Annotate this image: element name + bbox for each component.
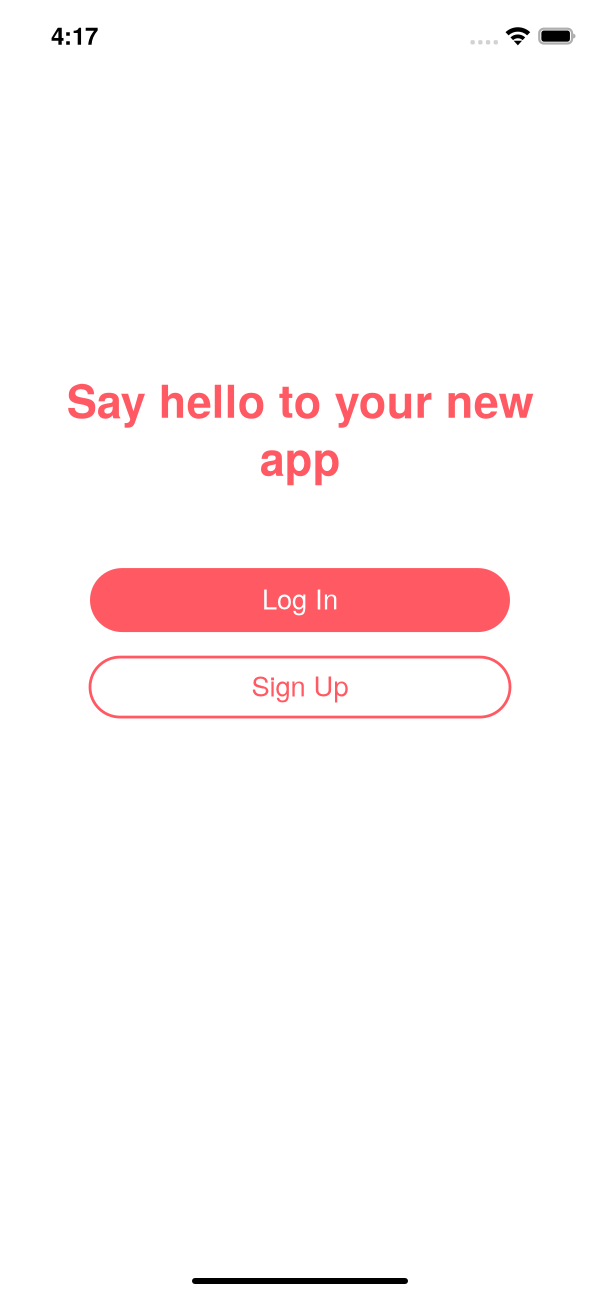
staticText: Log In xyxy=(262,578,338,617)
staticText: Sign Up xyxy=(251,665,348,704)
staticText: 4:17 xyxy=(51,18,98,52)
staticText: Say hello to your new app xyxy=(66,367,533,489)
button[interactable]: Log In xyxy=(90,568,510,632)
button[interactable]: Sign Up xyxy=(90,657,510,717)
